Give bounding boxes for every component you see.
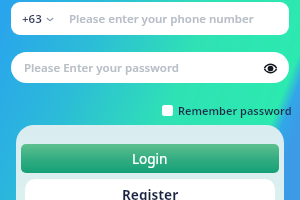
staticText: Register bbox=[122, 186, 179, 200]
button[interactable]: Register bbox=[25, 179, 275, 200]
button[interactable]: +63 bbox=[22, 11, 56, 27]
other: Select country code bbox=[46, 15, 54, 23]
button[interactable]: Login bbox=[21, 144, 279, 173]
button[interactable]: +63 bbox=[11, 2, 289, 35]
staticText: Login bbox=[132, 150, 168, 168]
staticText: Remember password bbox=[178, 103, 292, 118]
button[interactable]: Please Enter your password bbox=[11, 52, 289, 83]
staticText: Please enter your phone number bbox=[69, 11, 254, 27]
staticText: Please Enter your password bbox=[24, 60, 261, 76]
button[interactable]: Remember password bbox=[160, 101, 294, 120]
button[interactable]: Show password bbox=[261, 59, 279, 77]
staticText: +63 bbox=[22, 11, 42, 27]
